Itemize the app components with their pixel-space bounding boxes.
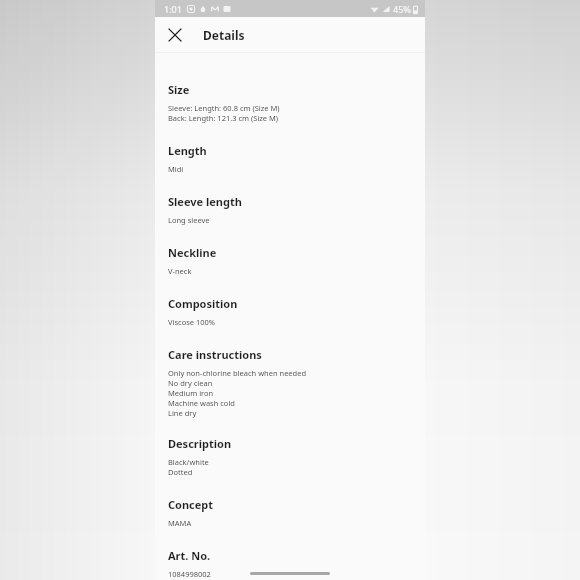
staticText: Midi: [168, 164, 184, 174]
staticText: Description: [168, 436, 232, 451]
staticText: Length: [168, 143, 207, 158]
staticText: Neckline: [168, 245, 217, 260]
staticText: 1084998002: [168, 569, 211, 579]
staticText: Black/white: [168, 457, 209, 467]
staticText: MAMA: [168, 518, 192, 528]
staticText: No dry clean: [168, 378, 213, 388]
staticText: Medium iron: [168, 388, 214, 398]
staticText: Concept: [168, 497, 214, 512]
staticText: V-neck: [168, 266, 192, 276]
staticText: Care instructions: [168, 347, 262, 362]
staticText: Sleeve length: [168, 194, 242, 209]
staticText: Machine wash cold: [168, 398, 235, 408]
staticText: Viscose 100%: [168, 317, 216, 327]
staticText: 45%: [393, 3, 411, 15]
staticText: Art. No.: [168, 548, 211, 563]
staticText: 1:01: [164, 3, 182, 15]
staticText: Only non-chlorine bleach when needed: [168, 368, 307, 378]
staticText: Size: [168, 82, 190, 97]
button[interactable]: Close: [162, 22, 188, 48]
staticText: Long sleeve: [168, 215, 210, 225]
staticText: Dotted: [168, 467, 193, 477]
staticText: Details: [203, 27, 245, 43]
staticText: Back: Length: 121.3 cm (Size M): [168, 113, 279, 123]
staticText: Composition: [168, 296, 238, 311]
staticText: Line dry: [168, 408, 197, 418]
staticText: Sleeve: Length: 60.8 cm (Size M): [168, 103, 280, 113]
